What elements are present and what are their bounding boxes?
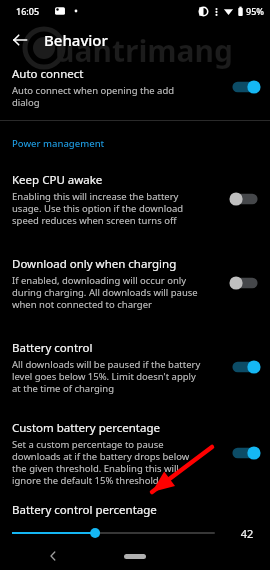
- button[interactable]: Back: [42, 545, 64, 567]
- button[interactable]: Toggle on: [228, 77, 262, 97]
- button[interactable]: Toggle off: [228, 189, 262, 209]
- staticText: uantrimang: [55, 30, 234, 71]
- staticText: 95%: [246, 5, 264, 17]
- button[interactable]: Back: [4, 24, 36, 56]
- button[interactable]: Battery control: [0, 334, 270, 400]
- staticText: 42: [234, 526, 260, 541]
- staticText: Enabling this will increase the battery …: [12, 190, 184, 227]
- staticText: Keep CPU awake: [12, 172, 103, 188]
- staticText: Behavior: [44, 30, 108, 50]
- staticText: Auto connect when opening the add dialog: [12, 84, 175, 109]
- staticText: Auto connect: [12, 66, 84, 82]
- button[interactable]: Auto connect: [0, 58, 270, 116]
- staticText: 16:05: [16, 5, 40, 17]
- button[interactable]: Home: [124, 554, 146, 559]
- button[interactable]: Battery control percentage: [0, 502, 270, 541]
- staticText: Power management: [12, 137, 105, 150]
- button[interactable]: Keep CPU awake: [0, 166, 270, 232]
- staticText: If enabled, downloading will occur only …: [12, 274, 198, 311]
- staticText: Set a custom percentage to pause downloa…: [12, 438, 190, 487]
- button[interactable]: Toggle on: [228, 357, 262, 377]
- staticText: Custom battery percentage: [12, 420, 161, 436]
- button[interactable]: Custom battery percentage: [0, 414, 270, 492]
- button[interactable]: Download only when charging: [0, 250, 270, 316]
- staticText: Battery control percentage: [12, 502, 157, 518]
- staticText: All downloads will be paused if the batt…: [12, 358, 201, 395]
- staticText: Download only when charging: [12, 256, 177, 272]
- button[interactable]: Toggle on: [228, 443, 262, 463]
- staticText: Battery control: [12, 340, 93, 356]
- button[interactable]: Toggle off: [228, 273, 262, 293]
